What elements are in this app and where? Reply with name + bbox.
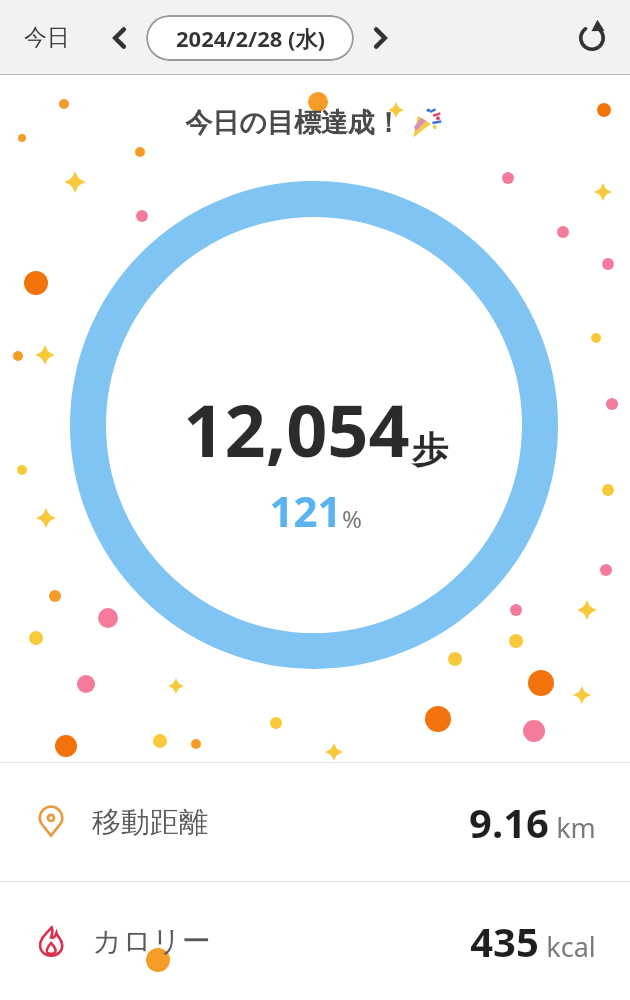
button[interactable]: 2024/2/28 (水) <box>146 15 354 61</box>
staticText: % <box>342 502 362 535</box>
staticText: 今日 <box>24 23 70 52</box>
button[interactable]: Refresh <box>568 14 616 62</box>
staticText: 9.16 <box>469 795 549 849</box>
staticText: 今日の目標達成！ <box>185 106 402 140</box>
button[interactable]: 移動距離 <box>0 763 630 881</box>
staticText: 移動距離 <box>92 804 208 841</box>
button[interactable]: Previous day <box>98 16 142 60</box>
staticText: カロリー <box>92 923 211 960</box>
staticText: 歩 <box>412 427 448 472</box>
staticText: km <box>556 809 596 846</box>
button[interactable]: Next day <box>358 16 402 60</box>
staticText: 435 <box>470 914 539 968</box>
staticText: 2024/2/28 (水) <box>176 23 325 53</box>
button[interactable]: カロリー <box>0 882 630 1000</box>
staticText: 12,054 <box>183 380 410 478</box>
staticText: 121 <box>269 482 342 539</box>
button[interactable]: 今日 <box>14 17 80 58</box>
staticText: kcal <box>546 928 596 965</box>
